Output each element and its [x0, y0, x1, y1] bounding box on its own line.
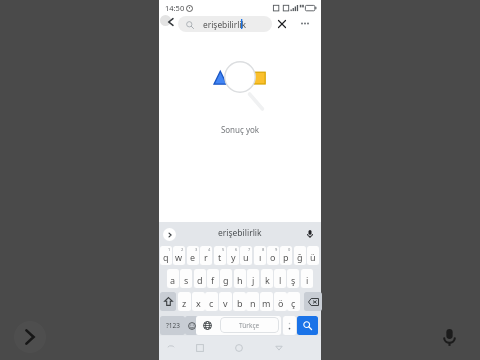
- button[interactable]: s: [180, 269, 192, 288]
- button[interactable]: Microphone: [435, 323, 463, 351]
- staticText: 1: [168, 247, 171, 252]
- staticText: ğ: [297, 251, 303, 263]
- staticText: o: [270, 251, 276, 263]
- staticText: d: [197, 274, 203, 286]
- button[interactable]: w: [173, 246, 185, 265]
- staticText: ı: [259, 251, 262, 263]
- staticText: 4: [208, 247, 211, 252]
- staticText: 14:50: [165, 3, 185, 13]
- staticText: p: [283, 251, 289, 263]
- button[interactable]: y: [227, 246, 239, 265]
- button[interactable]: Back: [159, 9, 175, 32]
- button[interactable]: q: [160, 246, 172, 265]
- staticText: h: [237, 274, 243, 286]
- button[interactable]: u: [240, 246, 252, 265]
- staticText: 9: [275, 247, 278, 252]
- staticText: j: [252, 274, 255, 286]
- staticText: x: [196, 297, 201, 309]
- button[interactable]: ?123: [160, 316, 185, 335]
- button[interactable]: ç: [287, 292, 300, 311]
- button[interactable]: h: [234, 269, 246, 288]
- staticText: Sonuç yok: [159, 124, 321, 135]
- staticText: 2: [181, 247, 184, 252]
- staticText: s: [184, 274, 189, 286]
- button[interactable]: g: [220, 269, 232, 288]
- button[interactable]: z: [178, 292, 191, 311]
- staticText: t: [218, 251, 222, 263]
- button[interactable]: Home: [228, 337, 250, 359]
- button[interactable]: Search: [297, 316, 318, 335]
- staticText: k: [265, 274, 270, 286]
- staticText: z: [182, 297, 187, 309]
- button[interactable]: ş: [287, 269, 299, 288]
- button[interactable]: ö: [274, 292, 287, 311]
- button[interactable]: erişebilirlik: [178, 16, 272, 32]
- button[interactable]: r: [200, 246, 212, 265]
- button[interactable]: [304, 292, 322, 311]
- button[interactable]: ü: [307, 246, 319, 265]
- staticText: ?123: [166, 321, 180, 330]
- button[interactable]: e: [187, 246, 199, 265]
- staticText: 5: [222, 247, 225, 252]
- button[interactable]: ı: [254, 246, 266, 265]
- button[interactable]: Voice input: [302, 226, 318, 242]
- button[interactable]: j: [247, 269, 259, 288]
- staticText: erişebilirlik: [218, 227, 262, 239]
- staticText: ö: [278, 297, 284, 309]
- button[interactable]: Period: [283, 316, 296, 335]
- staticText: Türkçe: [239, 321, 260, 330]
- button[interactable]: l: [274, 269, 286, 288]
- staticText: ç: [291, 297, 296, 309]
- staticText: e: [190, 251, 196, 263]
- staticText: 0: [288, 247, 291, 252]
- button[interactable]: Change language: [196, 316, 219, 335]
- staticText: 6: [235, 247, 238, 252]
- staticText: q: [163, 251, 169, 263]
- button[interactable]: x: [192, 292, 205, 311]
- button[interactable]: t: [214, 246, 226, 265]
- staticText: 3: [195, 247, 198, 252]
- staticText: l: [279, 274, 282, 286]
- button[interactable]: Recent apps: [189, 337, 211, 359]
- staticText: m: [262, 297, 271, 309]
- button[interactable]: ğ: [294, 246, 306, 265]
- button[interactable]: c: [205, 292, 218, 311]
- button[interactable]: o: [267, 246, 279, 265]
- staticText: g: [223, 274, 229, 286]
- button[interactable]: m: [260, 292, 273, 311]
- button[interactable]: d: [194, 269, 206, 288]
- staticText: ü: [310, 251, 316, 263]
- staticText: 7: [248, 247, 251, 252]
- button[interactable]: f: [207, 269, 219, 288]
- staticText: f: [211, 274, 215, 286]
- staticText: erişebilirlik: [203, 19, 247, 30]
- button[interactable]: b: [233, 292, 246, 311]
- staticText: c: [209, 297, 214, 309]
- button[interactable]: More options: [297, 15, 313, 31]
- staticText: b: [237, 297, 243, 309]
- button[interactable]: Clear search: [273, 16, 290, 32]
- button[interactable]: Türkçe: [220, 317, 279, 333]
- button[interactable]: v: [219, 292, 232, 311]
- staticText: 8: [262, 247, 265, 252]
- button[interactable]: Next video: [14, 321, 46, 353]
- button[interactable]: n: [246, 292, 259, 311]
- staticText: ş: [291, 274, 296, 286]
- button[interactable]: k: [261, 269, 273, 288]
- staticText: i: [306, 274, 309, 286]
- button[interactable]: i: [301, 269, 313, 288]
- staticText: n: [250, 297, 256, 309]
- button[interactable]: a: [167, 269, 179, 288]
- staticText: r: [204, 251, 208, 263]
- staticText: v: [223, 297, 228, 309]
- button[interactable]: Emoji: [185, 316, 198, 335]
- staticText: y: [231, 251, 236, 263]
- staticText: u: [243, 251, 249, 263]
- button[interactable]: p: [280, 246, 292, 265]
- button[interactable]: Back: [268, 337, 290, 359]
- button[interactable]: Show more suggestions: [162, 227, 177, 242]
- button[interactable]: [160, 292, 176, 311]
- button[interactable]: erişebilirlik: [189, 224, 291, 242]
- staticText: w: [175, 251, 183, 263]
